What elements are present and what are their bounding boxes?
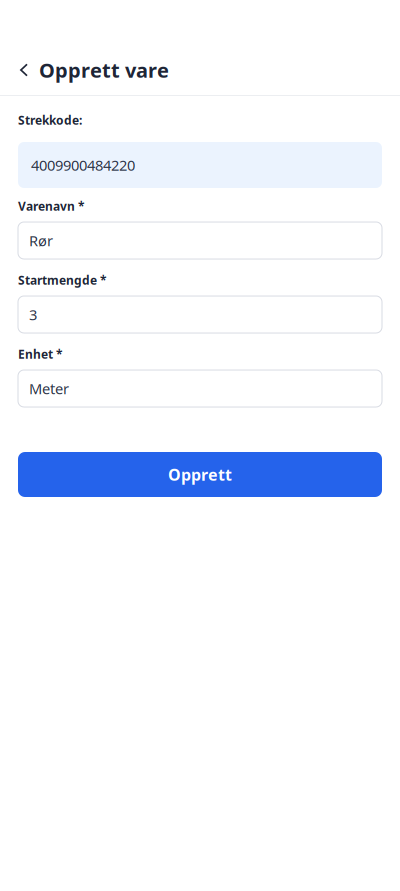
- button[interactable]: Back: [12, 50, 36, 90]
- staticText: Meter: [29, 379, 69, 398]
- button[interactable]: Rør: [18, 222, 382, 259]
- staticText: 3: [29, 305, 37, 324]
- staticText: 4009900484220: [31, 155, 135, 175]
- button[interactable]: 3: [18, 296, 382, 333]
- staticText: Opprett: [168, 464, 232, 485]
- staticText: Enhet *: [18, 346, 63, 362]
- staticText: Varenavn *: [18, 198, 85, 214]
- staticText: Opprett vare: [39, 57, 169, 83]
- button[interactable]: Meter: [18, 370, 382, 407]
- button[interactable]: Opprett: [18, 452, 382, 497]
- staticText: Startmengde *: [18, 272, 107, 288]
- staticText: Rør: [29, 231, 53, 250]
- staticText: Strekkode:: [18, 112, 82, 128]
